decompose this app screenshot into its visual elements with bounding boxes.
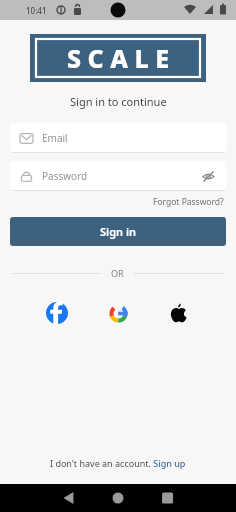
staticText: Password (42, 169, 88, 183)
button[interactable]: I don't have an account. Sign up (47, 454, 189, 472)
staticText: OR (111, 267, 124, 279)
button[interactable]: Email (10, 123, 226, 153)
button[interactable]: Sign in with Apple (166, 300, 192, 326)
staticText: Email (42, 131, 68, 145)
staticText: I don't have an account. Sign up (50, 457, 186, 469)
button[interactable]: Sign in with Google (105, 300, 131, 326)
staticText: Forgot Password? (153, 196, 224, 208)
button[interactable]: Password (10, 161, 226, 191)
button[interactable]: Sign in with Facebook (44, 300, 70, 326)
staticText: 10:41 (26, 5, 47, 16)
button[interactable]: Forgot Password? (151, 194, 226, 210)
staticText: Sign in to continue (70, 94, 167, 109)
button[interactable]: Show password (200, 168, 216, 184)
staticText: S C A L E (67, 41, 170, 75)
staticText: Sign in (100, 224, 137, 239)
button[interactable]: Sign in (10, 217, 226, 246)
